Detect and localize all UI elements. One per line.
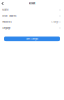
staticText: Email address <box>2 15 16 17</box>
button[interactable]: Back <box>0 1 6 6</box>
staticText: Change <box>51 21 58 23</box>
button[interactable]: Password <box>0 19 64 25</box>
button[interactable]: Save changes <box>4 36 60 41</box>
button[interactable]: Email address <box>0 13 64 19</box>
staticText: Password <box>2 21 11 23</box>
button[interactable]: Name <box>0 7 64 13</box>
button[interactable]: Language <box>0 25 64 31</box>
staticText: Account <box>28 2 35 5</box>
staticText: Save changes <box>26 37 38 40</box>
staticText: Language <box>2 27 10 29</box>
staticText: Name <box>2 9 8 11</box>
